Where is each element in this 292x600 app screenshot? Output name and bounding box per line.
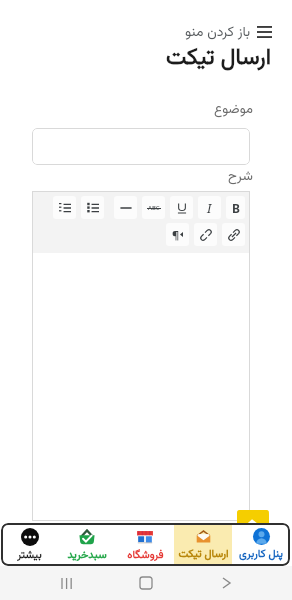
- button[interactable]: بیشتر: [1, 523, 58, 566]
- staticText: موضوع: [214, 99, 253, 120]
- button[interactable]: Strikethrough: [142, 196, 165, 219]
- button[interactable]: Home: [132, 569, 160, 597]
- button[interactable]: Open menu: [256, 22, 272, 42]
- staticText: ارسال تیکت: [178, 546, 229, 563]
- button[interactable]: Insert link: [222, 223, 245, 246]
- button[interactable]: [32, 128, 250, 165]
- button[interactable]: پنل کاربری: [232, 523, 290, 566]
- button[interactable]: سبدخرید: [58, 523, 116, 566]
- staticText: باز کردن منو: [185, 22, 251, 44]
- staticText: بیشتر: [17, 547, 42, 564]
- button[interactable]: Recents: [52, 569, 80, 597]
- staticText: ABC: [148, 204, 160, 212]
- button[interactable]: Text direction: [166, 223, 189, 246]
- staticText: شرح: [228, 166, 253, 187]
- button[interactable]: Bulleted list: [81, 196, 104, 219]
- button[interactable]: Numbered list: [53, 196, 76, 219]
- button[interactable]: ارسال تیکت: [174, 523, 232, 566]
- button[interactable]: Back: [212, 569, 240, 597]
- button[interactable]: Remove link: [194, 223, 217, 246]
- button[interactable]: Italic: [198, 196, 221, 219]
- button[interactable]: Horizontal rule: [114, 196, 137, 219]
- staticText: ارسال تیکت: [166, 40, 271, 76]
- staticText: فروشگاه: [127, 547, 164, 564]
- staticText: ¶: [172, 227, 180, 242]
- button[interactable]: فروشگاه: [116, 523, 174, 566]
- staticText: B: [232, 200, 240, 216]
- staticText: پنل کاربری: [239, 546, 283, 563]
- button[interactable]: Bold: [226, 196, 245, 219]
- staticText: I: [207, 200, 212, 216]
- staticText: سبدخرید: [67, 547, 107, 564]
- button[interactable]: Underline: [170, 196, 193, 219]
